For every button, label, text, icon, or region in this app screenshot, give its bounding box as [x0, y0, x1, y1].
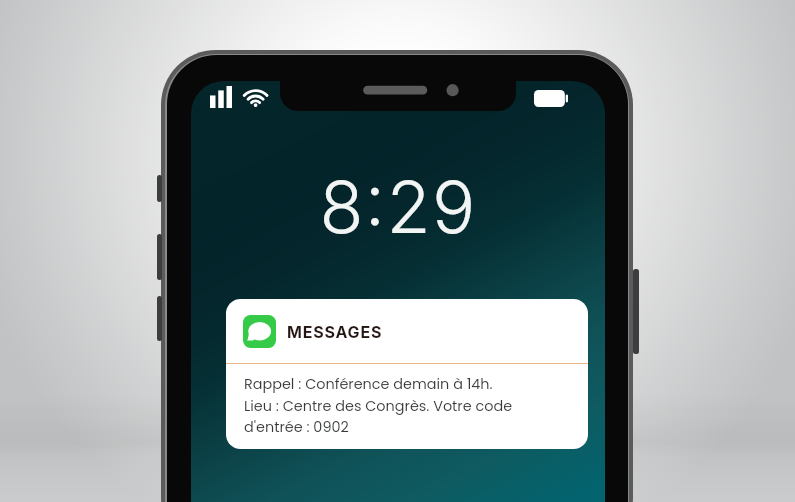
staticText: 8:29 [319, 163, 477, 250]
button[interactable]: MESSAGES [226, 299, 588, 449]
staticText: MESSAGES [287, 322, 383, 341]
staticText: Rappel : Conférence demain à 14h. Lieu :… [244, 374, 513, 437]
other: Cellular signal [210, 86, 232, 108]
other: Battery full [534, 90, 568, 107]
other: Wi-Fi [243, 86, 269, 109]
